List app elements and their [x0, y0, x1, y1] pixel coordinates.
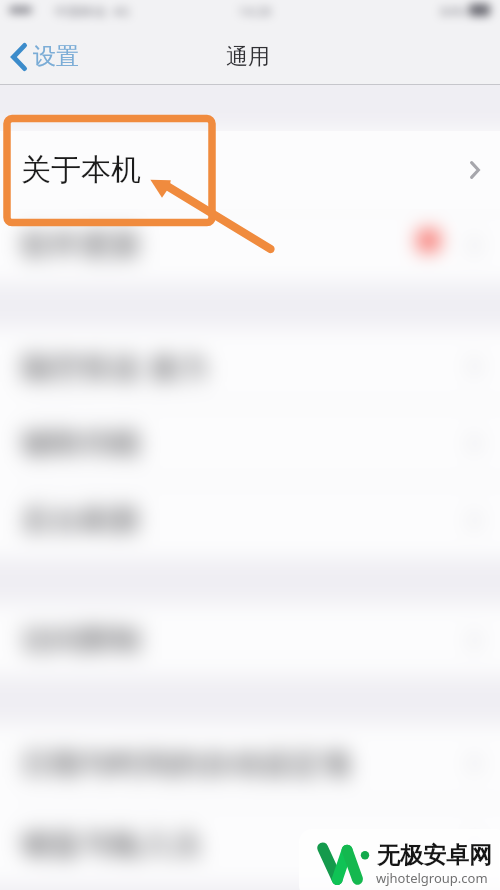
- button[interactable]: Back: [0, 42, 85, 71]
- staticText: 关于本机: [21, 151, 141, 189]
- button[interactable]: 软件更新: [0, 130, 500, 206]
- staticText: 软件更新: [21, 226, 141, 264]
- staticText: 后台刷新: [21, 501, 141, 539]
- staticText: 键盘与输入法: [21, 825, 201, 863]
- staticText: 中国移动 4G: [54, 2, 130, 18]
- button[interactable]: 软件更新: [0, 207, 500, 283]
- staticText: wjhotelgroup.com: [376, 869, 488, 887]
- other: About this device: [470, 161, 480, 179]
- button[interactable]: 关于本机: [0, 131, 500, 209]
- staticText: 无极安卓网: [377, 841, 492, 870]
- staticText: 14:28: [238, 2, 272, 18]
- button[interactable]: 日期与时间的自动设定项: [0, 724, 500, 803]
- staticText: 通用: [226, 43, 270, 71]
- other: Highlight annotation: [0, 0, 500, 890]
- button[interactable]: 后台刷新: [0, 482, 500, 558]
- staticText: 设置: [33, 42, 79, 71]
- staticText: 隔空投送 接力: [21, 346, 209, 387]
- button[interactable]: 辅助功能: [0, 405, 500, 481]
- button[interactable]: 隔空投送 接力: [0, 328, 500, 404]
- staticText: 84%: [440, 2, 466, 18]
- staticText: 软件更新: [21, 149, 141, 187]
- staticText: 日期与时间的自动设定项: [21, 745, 351, 783]
- staticText: 访问限制: [21, 621, 141, 659]
- button[interactable]: 访问限制: [0, 604, 500, 676]
- staticText: 辅助功能: [21, 424, 141, 462]
- button[interactable]: 键盘与输入法: [0, 804, 500, 884]
- other: Back: [11, 43, 27, 71]
